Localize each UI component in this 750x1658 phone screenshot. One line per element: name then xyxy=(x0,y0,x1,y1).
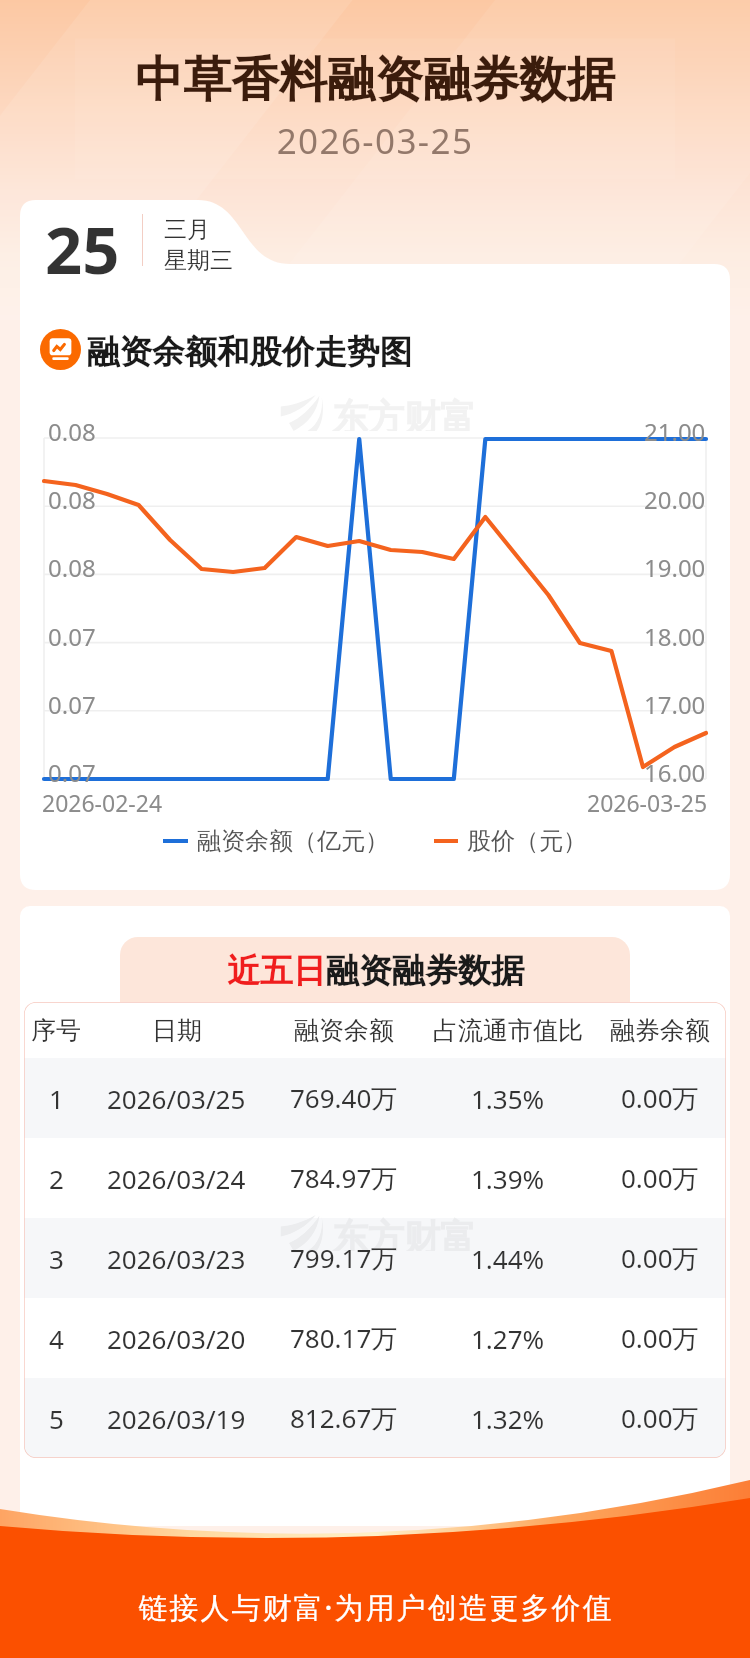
staticText: 0.00万 xyxy=(621,1160,699,1196)
staticText: 东方财富 xyxy=(332,1215,476,1251)
staticText: 股价（元） xyxy=(467,826,587,856)
staticText: 2026/03/19 xyxy=(107,1401,246,1436)
staticText: 1.39% xyxy=(471,1161,545,1196)
staticText: 21.00 xyxy=(644,415,706,448)
staticText: 17.00 xyxy=(644,688,706,721)
staticText: 0.08 xyxy=(48,415,96,448)
staticText: 1.44% xyxy=(471,1241,545,1276)
staticText: 780.17万 xyxy=(290,1320,398,1356)
staticText: 融券余额 xyxy=(610,1015,710,1046)
staticText: 19.00 xyxy=(644,551,706,584)
staticText: 0.00万 xyxy=(621,1400,699,1436)
button[interactable]: 1 xyxy=(24,1058,726,1138)
staticText: 三月 xyxy=(164,215,210,244)
staticText: 0.00万 xyxy=(621,1240,699,1276)
staticText: 4 xyxy=(49,1321,64,1356)
staticText: 0.07 xyxy=(48,756,96,789)
staticText: 1.32% xyxy=(471,1401,545,1436)
staticText: 2026-03-25 xyxy=(587,787,708,818)
staticText: 5 xyxy=(49,1401,64,1436)
staticText: 1 xyxy=(49,1081,64,1116)
button[interactable]: 3 xyxy=(24,1218,726,1298)
staticText: 链接人与财富·为用户创造更多价值 xyxy=(1,1587,750,1627)
staticText: 融资余额 xyxy=(294,1015,394,1046)
staticText: 0.07 xyxy=(48,620,96,653)
staticText: 日期 xyxy=(152,1015,202,1046)
staticText: 0.00万 xyxy=(621,1320,699,1356)
staticText: 25 xyxy=(45,205,120,294)
staticText: 2026/03/25 xyxy=(107,1081,246,1116)
button[interactable]: 4 xyxy=(24,1298,726,1378)
staticText: 2026-03-25 xyxy=(0,117,750,165)
staticText: 769.40万 xyxy=(290,1080,398,1116)
staticText: 融资融券数据 xyxy=(326,950,524,992)
staticText: 0.08 xyxy=(48,483,96,516)
staticText: 2026-02-24 xyxy=(42,787,163,818)
staticText: 20.00 xyxy=(644,483,706,516)
staticText: 0.08 xyxy=(48,551,96,584)
staticText: 3 xyxy=(49,1241,64,1276)
staticText: 2 xyxy=(49,1161,64,1196)
staticText: 2026/03/20 xyxy=(107,1321,246,1356)
button[interactable]: 5 xyxy=(24,1378,726,1458)
staticText: 东方财富 xyxy=(332,395,476,431)
staticText: 序号 xyxy=(31,1015,81,1046)
staticText: 2026/03/23 xyxy=(107,1241,246,1276)
staticText: 784.97万 xyxy=(290,1160,398,1196)
button[interactable]: 2 xyxy=(24,1138,726,1218)
staticText: 融资余额（亿元） xyxy=(197,826,389,856)
staticText: 16.00 xyxy=(644,756,706,789)
staticText: 星期三 xyxy=(164,246,233,275)
staticText: 812.67万 xyxy=(290,1400,398,1436)
staticText: 0.07 xyxy=(48,688,96,721)
other: 融资余额和股价走势图 xyxy=(40,329,81,370)
staticText: 0.00万 xyxy=(621,1080,699,1116)
staticText: 1.27% xyxy=(471,1321,545,1356)
staticText: 1.35% xyxy=(471,1081,545,1116)
staticText: 799.17万 xyxy=(290,1240,398,1276)
staticText: 18.00 xyxy=(644,620,706,653)
staticText: 融资余额和股价走势图 xyxy=(87,332,412,373)
staticText: 近五日 xyxy=(227,950,326,992)
staticText: 占流通市值比 xyxy=(433,1015,583,1046)
staticText: 中草香料融资融券数据 xyxy=(0,50,750,110)
staticText: 2026/03/24 xyxy=(107,1161,246,1196)
